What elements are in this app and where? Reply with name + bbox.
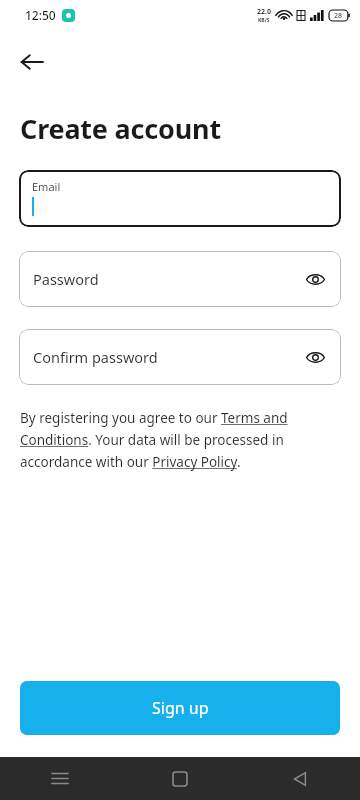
button[interactable]: Back — [10, 40, 54, 84]
button[interactable]: Sign up — [20, 681, 340, 735]
button[interactable]: Email — [19, 170, 341, 227]
button[interactable]: Toggle confirm password visibility — [298, 340, 332, 374]
button[interactable]: Toggle password visibility — [298, 262, 332, 296]
staticText: Email — [32, 179, 61, 194]
staticText: 22.0 — [257, 7, 271, 17]
staticText: Create account — [20, 110, 221, 147]
button[interactable]: By registering you agree to our Terms an… — [20, 409, 312, 471]
staticText: Password — [33, 269, 99, 289]
button[interactable]: Home — [120, 757, 240, 800]
staticText: 28 — [334, 11, 343, 21]
button[interactable]: Password — [19, 251, 341, 307]
button[interactable]: Confirm password — [19, 329, 341, 385]
button[interactable]: Back — [240, 757, 360, 800]
staticText: Confirm password — [33, 347, 158, 367]
staticText: 12:50 — [25, 7, 56, 23]
staticText: Sign up — [152, 697, 209, 719]
button[interactable]: Recent apps — [0, 757, 120, 800]
staticText: KB/S — [258, 17, 270, 24]
